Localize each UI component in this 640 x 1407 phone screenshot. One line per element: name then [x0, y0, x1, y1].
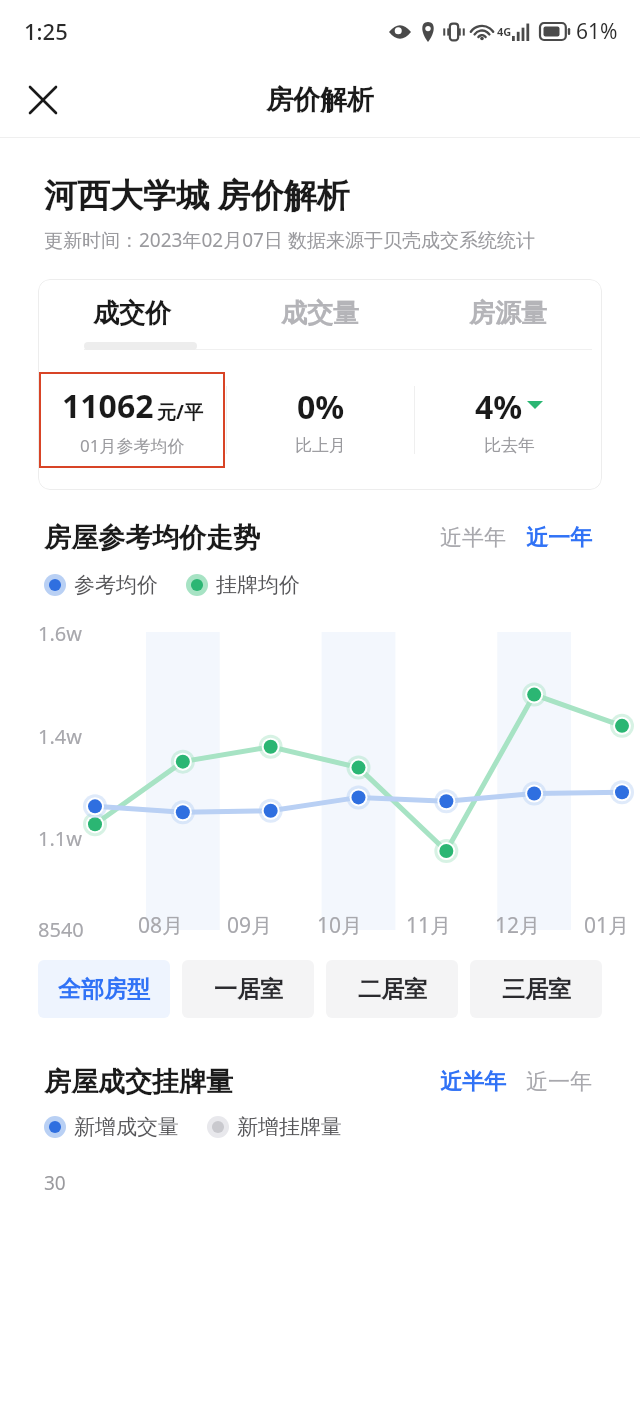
- staticText: 房源量: [469, 297, 547, 330]
- staticText: 成交量: [281, 297, 359, 330]
- staticText: 30: [44, 1170, 66, 1196]
- staticText: 全部房型: [58, 975, 150, 1004]
- staticText: 三居室: [502, 975, 571, 1004]
- button[interactable]: 4%: [415, 372, 602, 468]
- staticText: 房价解析: [266, 83, 374, 117]
- button[interactable]: Close: [18, 75, 68, 125]
- staticText: 新增挂牌量: [237, 1114, 342, 1140]
- staticText: 0%: [297, 385, 345, 429]
- staticText: 近半年: [440, 524, 506, 552]
- button[interactable]: 0%: [227, 372, 414, 468]
- staticText: 一居室: [214, 975, 283, 1004]
- button[interactable]: 全部房型: [38, 960, 170, 1018]
- staticText: 08月: [138, 911, 184, 940]
- staticText: 11月: [406, 911, 452, 940]
- button[interactable]: 近一年: [522, 1064, 596, 1100]
- staticText: 新增成交量: [74, 1114, 179, 1140]
- button[interactable]: 成交量: [226, 297, 414, 330]
- staticText: 1.6w: [38, 620, 82, 647]
- staticText: 61%: [576, 17, 618, 46]
- button[interactable]: 挂牌均价: [186, 572, 300, 598]
- button[interactable]: 房源量: [414, 297, 602, 330]
- staticText: 房屋成交挂牌量: [44, 1065, 233, 1099]
- staticText: 1.1w: [38, 825, 82, 852]
- staticText: 河西大学城 房价解析: [44, 172, 350, 217]
- staticText: 10月: [317, 911, 363, 940]
- staticText: 1:25: [24, 16, 68, 46]
- staticText: 4G: [497, 24, 512, 39]
- staticText: 比上月: [295, 435, 346, 456]
- staticText: 12月: [495, 911, 541, 940]
- staticText: 成交价: [93, 297, 171, 330]
- button[interactable]: 成交价: [38, 297, 226, 330]
- button[interactable]: 一居室: [182, 960, 314, 1018]
- button[interactable]: 二居室: [326, 960, 458, 1018]
- staticText: 元/平: [157, 399, 203, 425]
- staticText: 比去年: [484, 435, 535, 456]
- staticText: 4%: [475, 385, 523, 429]
- staticText: 8540: [38, 916, 84, 943]
- button[interactable]: 近一年: [522, 520, 596, 556]
- staticText: 近一年: [526, 1068, 592, 1096]
- staticText: 01月参考均价: [80, 434, 185, 457]
- button[interactable]: 11062: [39, 372, 225, 468]
- button[interactable]: 新增挂牌量: [207, 1114, 342, 1140]
- staticText: 1.4w: [38, 723, 82, 750]
- button[interactable]: 新增成交量: [44, 1114, 179, 1140]
- button[interactable]: 近半年: [436, 520, 510, 556]
- staticText: 二居室: [358, 975, 427, 1004]
- staticText: 挂牌均价: [216, 572, 300, 598]
- staticText: 01月: [584, 911, 630, 940]
- staticText: 近一年: [526, 524, 592, 552]
- staticText: 近半年: [440, 1068, 506, 1096]
- staticText: 09月: [227, 911, 273, 940]
- button[interactable]: 近半年: [436, 1064, 510, 1100]
- staticText: 11062: [62, 384, 154, 428]
- button[interactable]: 三居室: [470, 960, 602, 1018]
- staticText: 房屋参考均价走势: [44, 521, 260, 555]
- staticText: 更新时间：2023年02月07日 数据来源于贝壳成交系统统计: [44, 227, 535, 253]
- staticText: 参考均价: [74, 572, 158, 598]
- button[interactable]: 参考均价: [44, 572, 158, 598]
